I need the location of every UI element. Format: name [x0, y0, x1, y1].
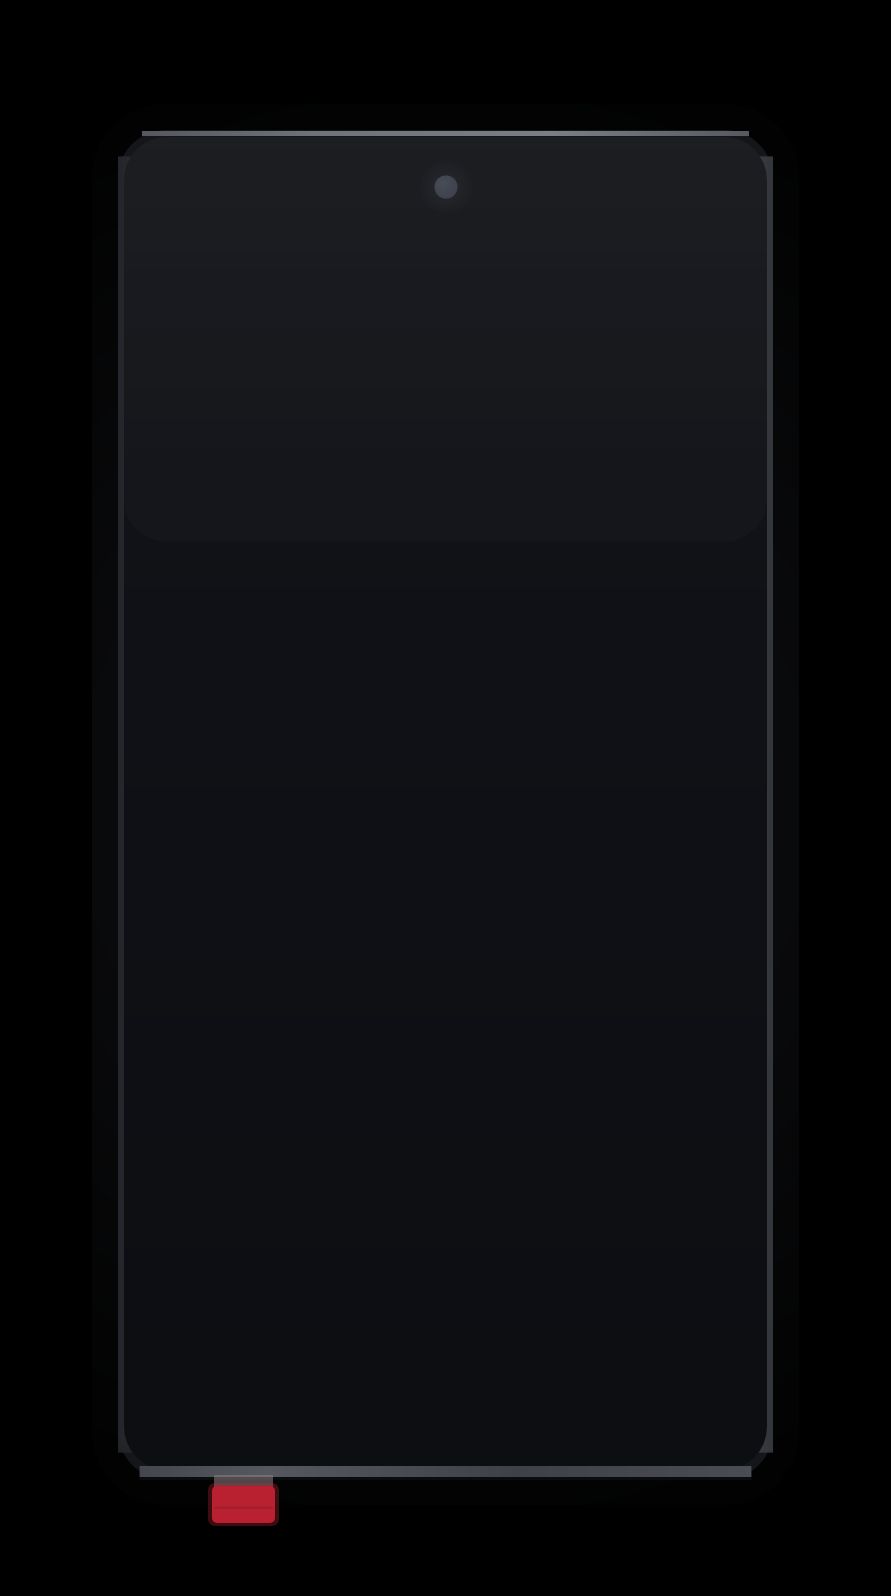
button[interactable]: Smartphone display assembly replacement … [0, 0, 891, 1596]
